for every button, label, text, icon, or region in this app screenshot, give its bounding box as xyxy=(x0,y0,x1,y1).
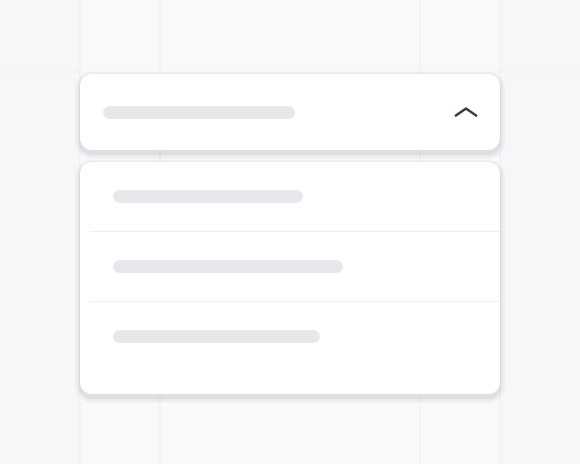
button[interactable] xyxy=(80,302,500,371)
button[interactable]: Collapse xyxy=(80,74,500,150)
button[interactable] xyxy=(80,232,500,301)
button[interactable]: Collapse xyxy=(446,92,486,132)
button[interactable] xyxy=(80,162,500,231)
